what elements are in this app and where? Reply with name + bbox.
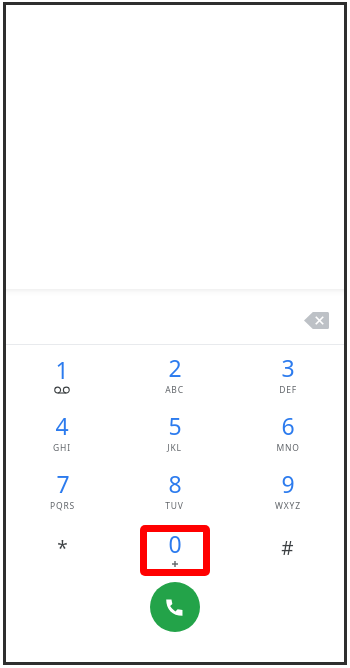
button[interactable]: 3 <box>231 347 344 405</box>
button[interactable]: 2 <box>118 347 231 405</box>
button[interactable]: 4 <box>6 405 118 463</box>
button[interactable]: 6 <box>231 405 344 463</box>
staticText: PQRS <box>50 500 75 512</box>
button[interactable]: # <box>231 521 344 579</box>
staticText: 0 <box>168 528 182 559</box>
staticText: MNO <box>276 442 300 454</box>
staticText: 8 <box>168 468 182 499</box>
staticText: * <box>57 535 68 561</box>
button[interactable]: 5 <box>118 405 231 463</box>
staticText: 4 <box>55 410 69 441</box>
button[interactable]: 0 <box>118 521 231 579</box>
button[interactable]: Backspace <box>296 303 336 337</box>
button[interactable]: 9 <box>231 463 344 521</box>
staticText: ABC <box>165 384 184 396</box>
staticText: # <box>281 535 294 561</box>
button[interactable]: * <box>6 521 118 579</box>
staticText: TUV <box>165 500 184 512</box>
staticText: JKL <box>167 442 182 454</box>
staticText: 7 <box>56 468 70 499</box>
staticText: 6 <box>281 410 295 441</box>
button[interactable]: 8 <box>118 463 231 521</box>
staticText: 5 <box>168 410 182 441</box>
staticText: 2 <box>168 352 182 383</box>
button[interactable]: 7 <box>6 463 118 521</box>
button[interactable]: 1 <box>6 347 118 405</box>
button[interactable]: Call <box>150 582 200 632</box>
staticText: WXYZ <box>275 500 301 512</box>
staticText: 1 <box>55 354 69 385</box>
staticText: 3 <box>281 352 295 383</box>
staticText: GHI <box>53 442 71 454</box>
staticText: DEF <box>279 384 297 396</box>
staticText: 9 <box>281 468 295 499</box>
